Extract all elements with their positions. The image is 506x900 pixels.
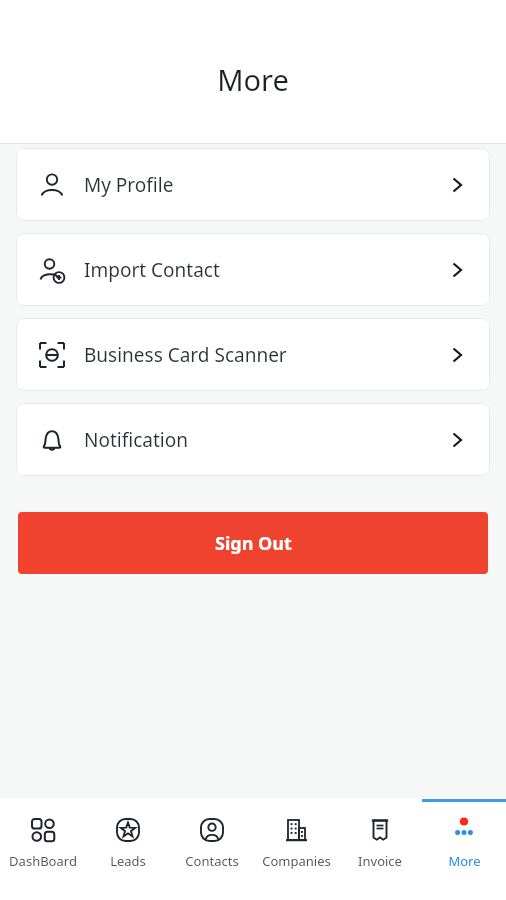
staticText: Companies: [262, 852, 331, 870]
other: More: [449, 815, 479, 845]
staticText: Notification: [84, 427, 446, 453]
button[interactable]: Notification: [16, 403, 490, 476]
button[interactable]: Business Card Scanner: [16, 318, 490, 391]
button[interactable]: Companies: [254, 799, 338, 900]
button[interactable]: My Profile: [16, 148, 490, 221]
staticText: More: [448, 852, 481, 870]
button[interactable]: Sign Out: [18, 512, 488, 574]
staticText: Invoice: [358, 852, 402, 870]
staticText: Sign Out: [215, 531, 292, 556]
button[interactable]: DashBoard: [0, 799, 85, 900]
button[interactable]: Invoice: [338, 799, 422, 900]
button[interactable]: Leads: [85, 799, 170, 900]
staticText: Leads: [110, 852, 146, 870]
staticText: My Profile: [84, 172, 446, 198]
staticText: DashBoard: [9, 852, 77, 870]
staticText: More: [217, 60, 289, 99]
button[interactable]: Contacts: [170, 799, 254, 900]
staticText: Import Contact: [84, 257, 446, 283]
staticText: Contacts: [185, 852, 239, 870]
staticText: Business Card Scanner: [84, 342, 446, 368]
button[interactable]: More: [422, 799, 506, 900]
button[interactable]: Import Contact: [16, 233, 490, 306]
